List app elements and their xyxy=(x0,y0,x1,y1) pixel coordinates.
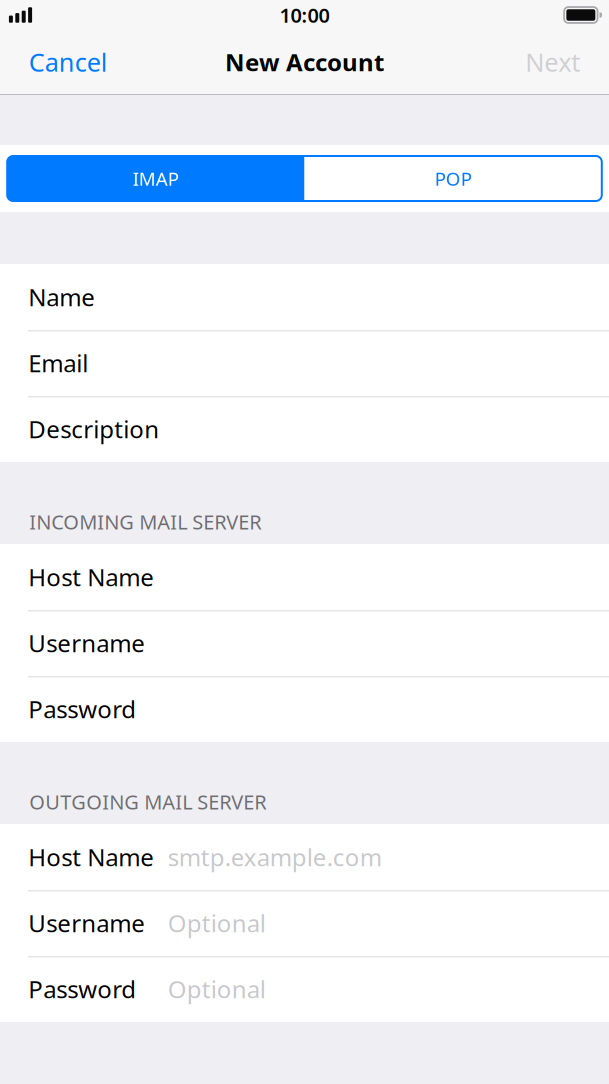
button[interactable]: Cancel xyxy=(14,35,123,89)
staticText: POP xyxy=(435,166,472,191)
button[interactable]: IMAP xyxy=(7,156,304,201)
button[interactable]: Email xyxy=(0,330,609,396)
staticText: Email xyxy=(28,347,88,379)
button[interactable]: Description xyxy=(0,396,609,462)
staticText: Optional xyxy=(168,907,266,939)
staticText: Host Name xyxy=(28,561,154,593)
button[interactable]: POP xyxy=(304,156,602,201)
staticText: Username xyxy=(28,627,145,659)
button[interactable]: Next xyxy=(510,35,595,89)
button[interactable]: Password xyxy=(0,956,609,1022)
staticText: Next xyxy=(525,45,580,79)
button[interactable]: Host Name xyxy=(0,544,609,610)
staticText: Password xyxy=(28,973,136,1005)
button[interactable]: Name xyxy=(0,264,609,330)
staticText: Description xyxy=(28,413,159,445)
staticText: New Account xyxy=(225,46,384,78)
button[interactable]: Password xyxy=(0,676,609,742)
staticText: OUTGOING MAIL SERVER xyxy=(29,788,266,815)
button[interactable]: Username xyxy=(0,610,609,676)
staticText: Host Name xyxy=(28,841,154,873)
staticText: smtp.example.com xyxy=(168,841,382,873)
button[interactable]: Host Name xyxy=(0,824,609,890)
staticText: 10:00 xyxy=(279,2,329,28)
staticText: Cancel xyxy=(29,45,108,79)
staticText: IMAP xyxy=(133,166,179,191)
staticText: Optional xyxy=(168,973,266,1005)
staticText: INCOMING MAIL SERVER xyxy=(29,508,261,535)
button[interactable]: Username xyxy=(0,890,609,956)
staticText: Password xyxy=(28,693,136,725)
staticText: Username xyxy=(28,907,145,939)
staticText: Name xyxy=(28,281,95,313)
